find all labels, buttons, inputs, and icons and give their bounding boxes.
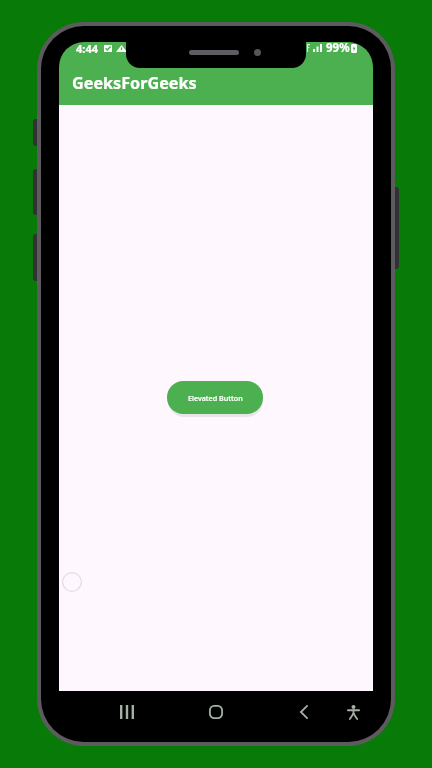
staticText: 99% xyxy=(326,42,350,56)
staticText: GeeksForGeeks xyxy=(72,72,197,94)
button[interactable]: Elevated Button xyxy=(167,381,263,414)
staticText: Elevated Button xyxy=(188,393,243,403)
staticText: 4:44 xyxy=(76,42,98,56)
button[interactable]: Back xyxy=(282,690,326,734)
button[interactable]: Recent apps xyxy=(105,690,149,734)
button[interactable]: Home xyxy=(194,690,238,734)
button[interactable]: Accessibility xyxy=(331,690,375,734)
